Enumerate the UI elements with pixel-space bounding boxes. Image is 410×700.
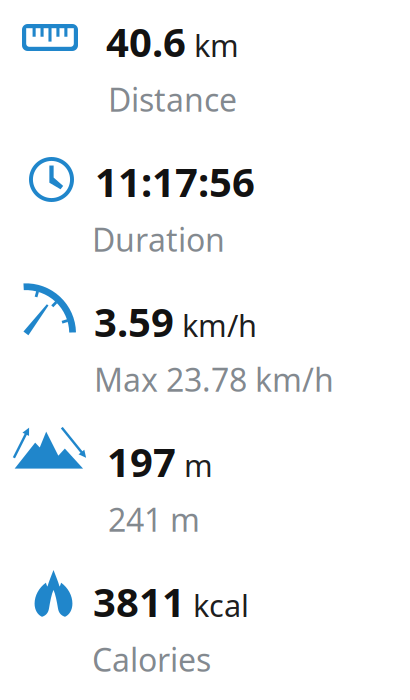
button[interactable]: 3.59 xyxy=(0,280,410,420)
staticText: m xyxy=(176,445,213,485)
staticText: kcal xyxy=(185,585,249,625)
button[interactable]: 197 xyxy=(0,420,410,560)
staticText: 40.6 xyxy=(106,15,186,68)
staticText: Duration xyxy=(92,218,225,260)
button[interactable]: 3811 xyxy=(0,560,410,700)
staticText: km/h xyxy=(174,305,257,345)
staticText: km xyxy=(186,25,239,65)
staticText: Calories xyxy=(92,638,211,680)
staticText: 3.59 xyxy=(94,295,174,348)
staticText: 11:17:56 xyxy=(95,155,255,208)
button[interactable]: 40.6 xyxy=(0,0,410,140)
staticText: 3811 xyxy=(93,575,185,628)
staticText: 197 xyxy=(107,435,176,488)
staticText: 241 m xyxy=(108,498,200,540)
staticText: Distance xyxy=(108,78,237,120)
staticText: Max 23.78 km/h xyxy=(94,358,334,400)
button[interactable]: 11:17:56 xyxy=(0,140,410,280)
